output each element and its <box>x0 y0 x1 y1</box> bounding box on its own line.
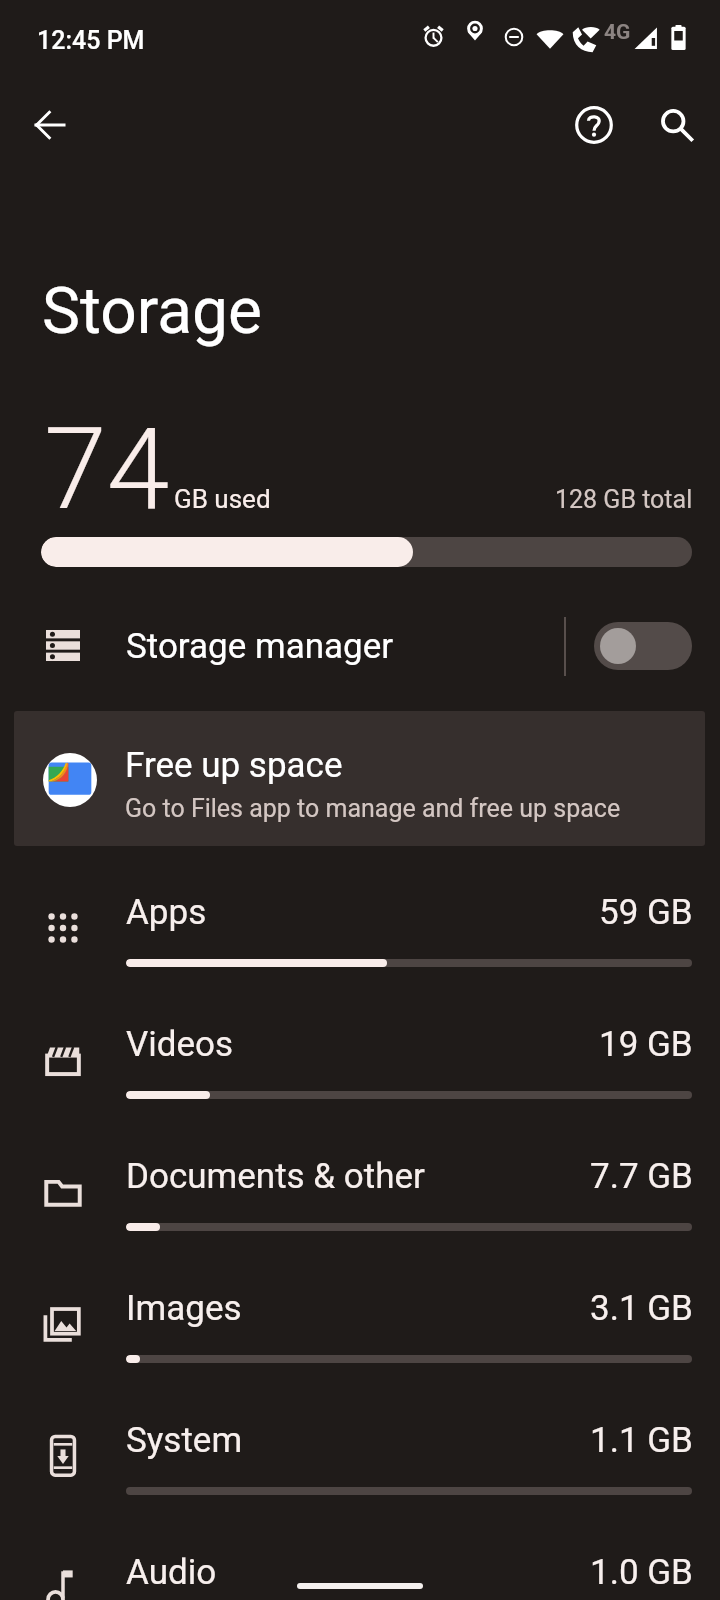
button[interactable]: Search <box>641 89 713 161</box>
staticText: 74 <box>44 403 170 535</box>
staticText: Free up space <box>125 745 343 786</box>
staticText: Storage <box>42 274 262 349</box>
button[interactable]: Storage manager <box>0 600 720 694</box>
button[interactable]: Back <box>14 89 86 161</box>
staticText: 12:45 PM <box>37 26 145 55</box>
staticText: 1.1 GB <box>590 1420 693 1461</box>
button[interactable]: Help <box>558 89 630 161</box>
button[interactable]: System <box>0 1420 720 1552</box>
button[interactable]: Apps <box>0 892 720 1024</box>
button[interactable]: Documents & other <box>0 1156 720 1288</box>
staticText: Storage manager <box>126 626 394 667</box>
staticText: 128 GB total <box>555 485 693 514</box>
staticText: System <box>126 1420 243 1461</box>
staticText: 1.0 GB <box>590 1552 693 1593</box>
button[interactable]: Free up space <box>14 711 705 846</box>
staticText: 19 GB <box>599 1024 693 1065</box>
staticText: Images <box>126 1288 242 1329</box>
staticText: 59 GB <box>599 892 693 933</box>
button[interactable]: Storage manager toggle <box>594 622 692 670</box>
staticText: Go to Files app to manage and free up sp… <box>125 794 621 823</box>
button[interactable]: Audio <box>0 1552 720 1600</box>
button[interactable]: Videos <box>0 1024 720 1156</box>
staticText: 3.1 GB <box>590 1288 693 1329</box>
staticText: 4G <box>604 20 631 45</box>
staticText: Documents & other <box>126 1156 425 1197</box>
staticText: 7.7 GB <box>590 1156 693 1197</box>
staticText: Videos <box>126 1024 234 1065</box>
staticText: Audio <box>126 1552 217 1593</box>
staticText: GB used <box>174 484 271 514</box>
button[interactable]: Images <box>0 1288 720 1420</box>
staticText: Apps <box>126 892 207 933</box>
